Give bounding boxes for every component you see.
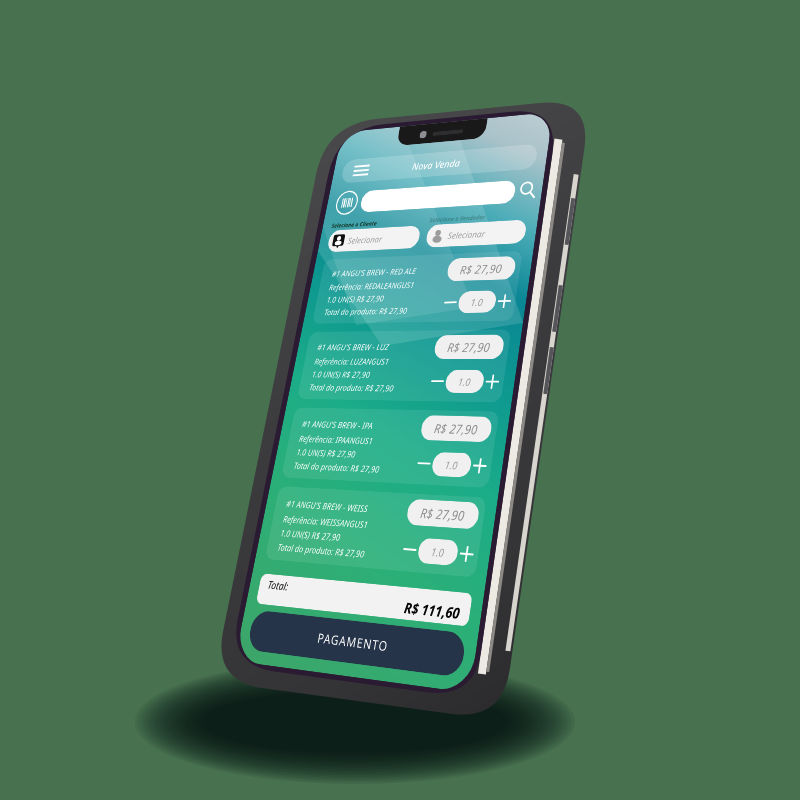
button[interactable]: Increase quantity <box>316 382 338 404</box>
button[interactable]: PAGAMENTO <box>16 712 344 764</box>
staticText: R$ 27,90 <box>250 558 316 581</box>
button[interactable]: Increase quantity <box>316 606 338 628</box>
button[interactable]: 1.0 <box>256 377 314 409</box>
button[interactable]: R$ 27,90 <box>16 545 344 645</box>
staticText: 1.0 <box>275 496 295 515</box>
staticText: 1.0 <box>275 384 295 403</box>
button[interactable]: Search <box>324 105 352 133</box>
staticText: 1.0 <box>275 608 295 627</box>
staticText: 1.0 <box>275 272 295 291</box>
staticText: PAGAMENTO <box>126 727 235 749</box>
button[interactable]: R$ 27,90 <box>16 321 344 421</box>
button[interactable]: Increase quantity <box>316 494 338 516</box>
button[interactable]: Increase quantity <box>316 270 338 292</box>
staticText: R$ 27,90 <box>250 446 316 469</box>
staticText: R$ 27,90 <box>250 334 316 357</box>
button[interactable]: Decrease quantity <box>232 494 254 516</box>
button[interactable]: 1.0 <box>256 265 314 297</box>
button[interactable]: 1.0 <box>256 489 314 521</box>
button[interactable]: R$ 27,90 <box>16 209 344 309</box>
staticText: Selecione o Vendedor <box>186 149 344 161</box>
button[interactable]: Decrease quantity <box>232 606 254 628</box>
staticText: R$ 27,90 <box>250 222 316 245</box>
button[interactable]: Selecionar <box>186 163 344 198</box>
button[interactable]: R$ 27,90 <box>16 433 344 533</box>
button[interactable]: 1.0 <box>256 601 314 633</box>
staticText: R$ 111,60 <box>249 677 330 702</box>
